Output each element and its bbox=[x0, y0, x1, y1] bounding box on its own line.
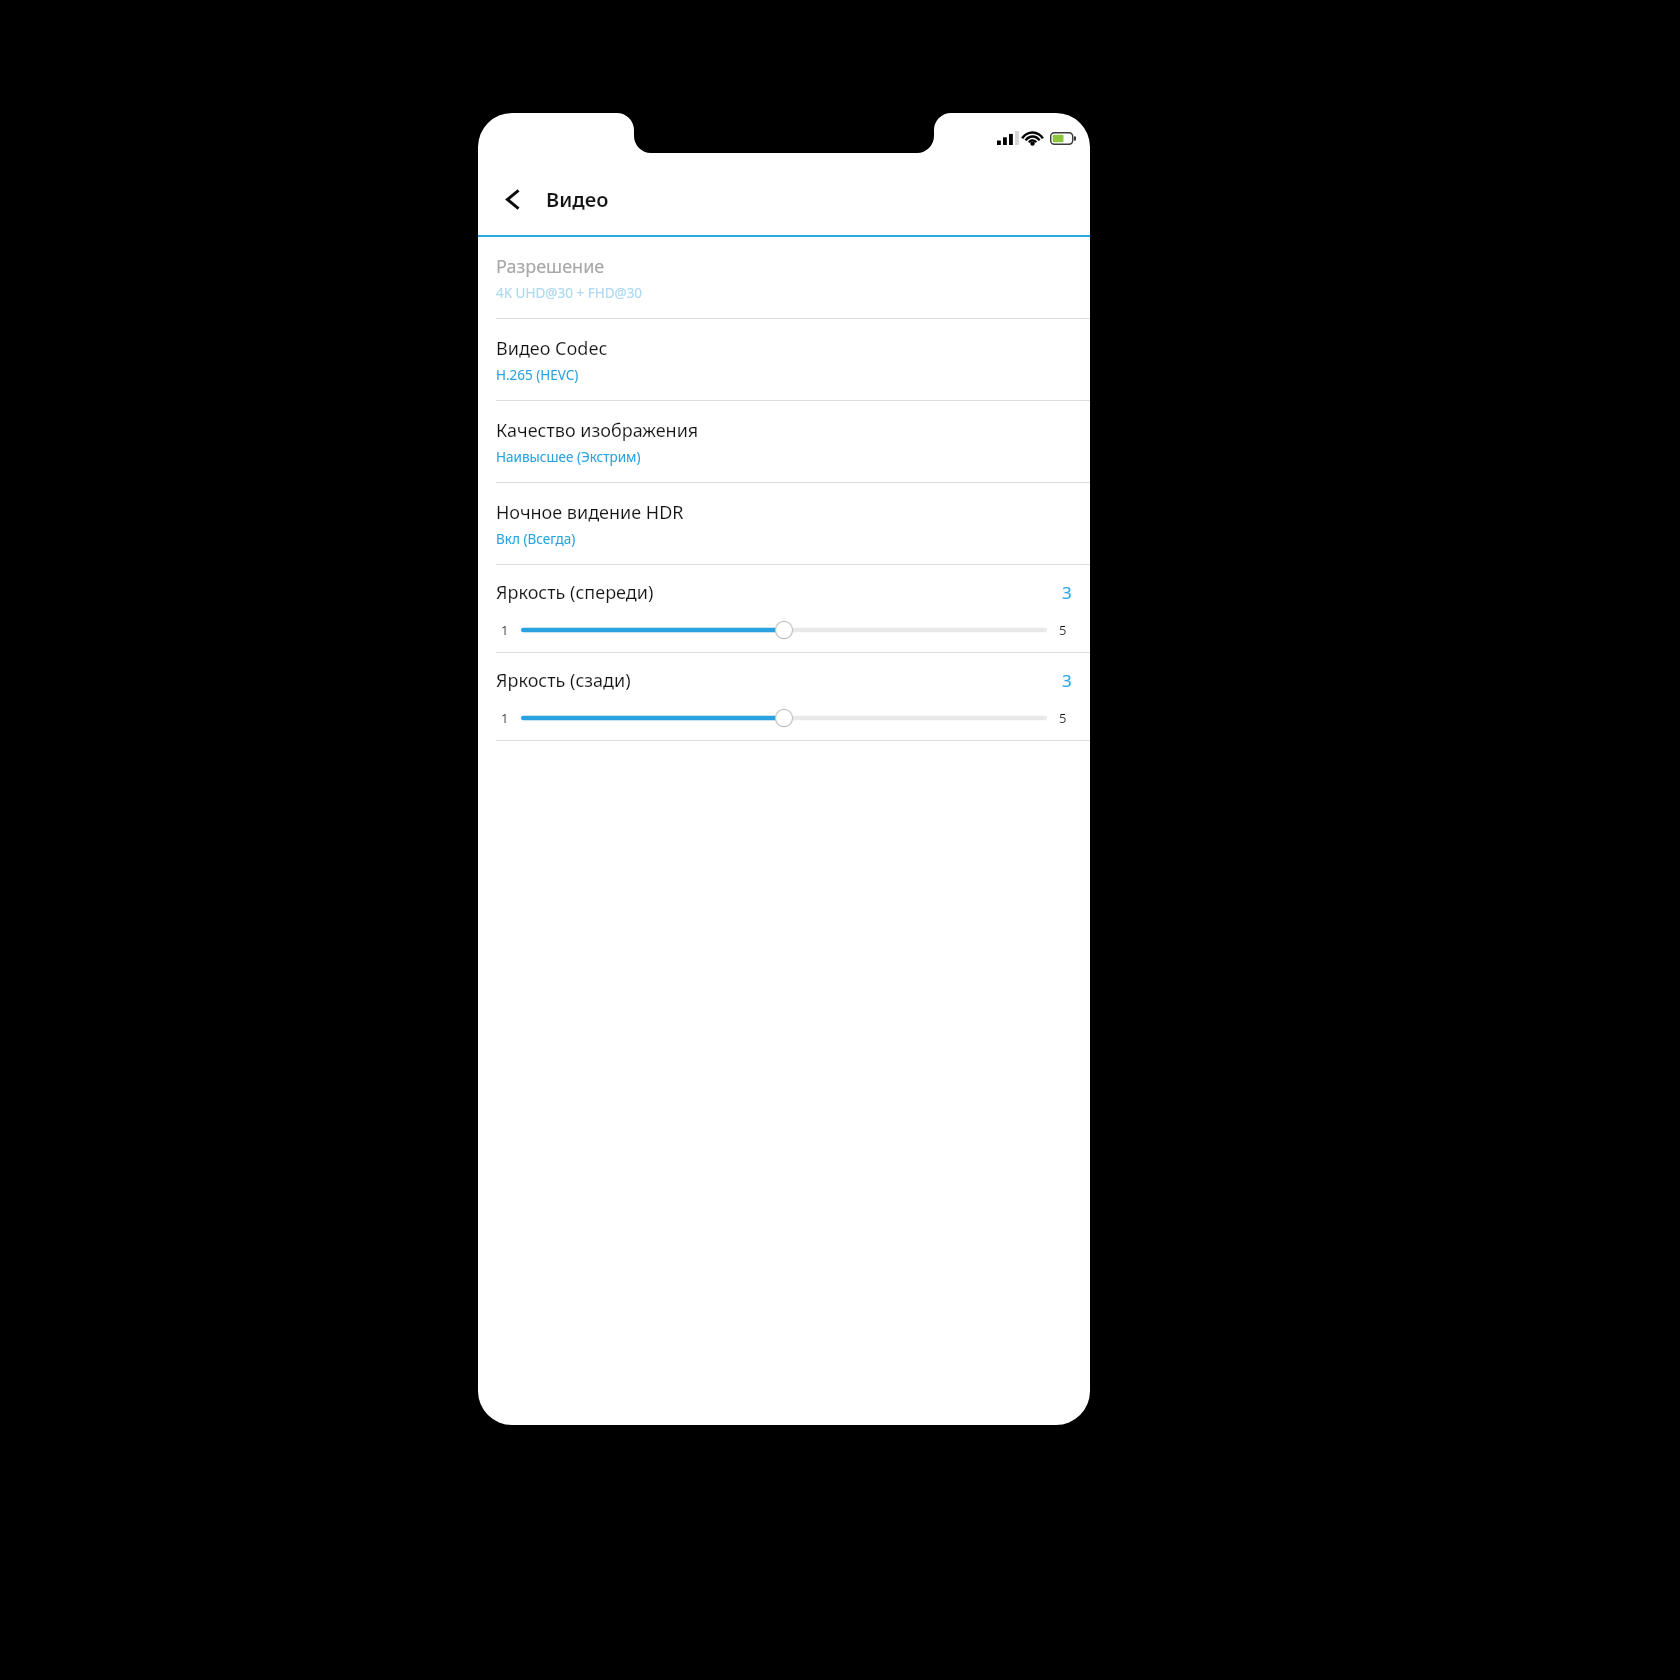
staticText: 1 bbox=[501, 621, 509, 639]
staticText: 3 bbox=[1062, 581, 1072, 604]
button[interactable]: Яркость (спереди) bbox=[478, 565, 1090, 652]
button[interactable]: Качество изображения bbox=[478, 401, 1090, 482]
staticText: Вкл (Всегда) bbox=[496, 530, 576, 548]
button[interactable]: Видео Codec bbox=[478, 319, 1090, 400]
staticText: Ночное видение HDR bbox=[496, 500, 684, 525]
staticText: 4K UHD@30 + FHD@30 bbox=[496, 284, 643, 302]
staticText: Качество изображения bbox=[496, 418, 699, 443]
button: Разрешение bbox=[478, 237, 1090, 318]
staticText: 1 bbox=[501, 709, 509, 727]
button[interactable]: Back bbox=[488, 174, 538, 224]
staticText: Наивысшее (Экстрим) bbox=[496, 448, 641, 466]
staticText: Видео Codec bbox=[496, 336, 608, 361]
staticText: 5 bbox=[1059, 621, 1067, 639]
staticText: 3 bbox=[1062, 669, 1072, 692]
button[interactable]: Ночное видение HDR bbox=[478, 483, 1090, 564]
staticText: Видео bbox=[546, 186, 609, 213]
staticText: Яркость (спереди) bbox=[496, 580, 654, 605]
staticText: 5 bbox=[1059, 709, 1067, 727]
staticText: Яркость (сзади) bbox=[496, 668, 631, 693]
staticText: H.265 (HEVC) bbox=[496, 366, 579, 384]
staticText: Разрешение bbox=[496, 254, 605, 279]
button[interactable]: Яркость (сзади) bbox=[478, 653, 1090, 740]
